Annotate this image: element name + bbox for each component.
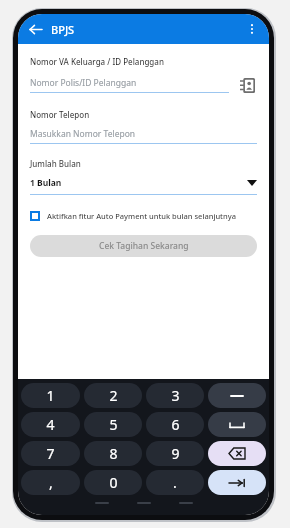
staticText: 4 xyxy=(46,415,55,434)
button[interactable]: Minus xyxy=(208,383,266,408)
staticText: 8 xyxy=(109,444,118,463)
button[interactable]: Cek Tagihan Sekarang xyxy=(30,235,257,257)
button[interactable]: 9 xyxy=(146,441,204,466)
button[interactable]: Back xyxy=(24,18,46,40)
button[interactable]: Masukkan Nomor Telepon xyxy=(30,128,257,144)
staticText: Nomor Polis/ID Pelanggan xyxy=(30,77,137,89)
staticText: Masukkan Nomor Telepon xyxy=(30,128,136,140)
button[interactable]: 6 xyxy=(146,412,204,437)
staticText: 5 xyxy=(109,415,118,434)
staticText: Nomor Telepon xyxy=(30,109,90,120)
staticText: Nomor VA Keluarga / ID Pelanggan xyxy=(30,56,164,67)
button[interactable]: 2 xyxy=(84,383,142,408)
button[interactable]: Next xyxy=(208,470,266,495)
button[interactable]: Pick contact xyxy=(237,75,257,95)
button[interactable]: Backspace xyxy=(208,441,266,466)
staticText: 1 xyxy=(46,386,55,405)
button[interactable]: Nomor Polis/ID Pelanggan xyxy=(30,77,229,93)
button[interactable]: Aktifkan fitur Auto Payment untuk bulan … xyxy=(30,211,257,221)
button[interactable]: , xyxy=(21,470,80,495)
button[interactable]: 0 xyxy=(84,470,142,495)
staticText: . xyxy=(173,473,177,492)
button[interactable]: . xyxy=(146,470,204,495)
button[interactable]: More options xyxy=(241,18,263,40)
staticText: Jumlah Bulan xyxy=(30,158,81,169)
button[interactable]: 1 Bulan xyxy=(30,177,257,195)
staticText: 1 Bulan xyxy=(30,177,247,189)
staticText: 9 xyxy=(171,444,180,463)
staticText: , xyxy=(49,473,53,492)
button[interactable]: 3 xyxy=(146,383,204,408)
button[interactable]: 7 xyxy=(21,441,80,466)
button[interactable]: 5 xyxy=(84,412,142,437)
staticText: 7 xyxy=(46,444,55,463)
staticText: 2 xyxy=(109,386,118,405)
staticText: BPJS xyxy=(51,22,75,37)
staticText: Cek Tagihan Sekarang xyxy=(99,240,189,252)
staticText: 3 xyxy=(171,386,180,405)
button[interactable]: 1 xyxy=(21,383,80,408)
staticText: 0 xyxy=(109,473,118,492)
button[interactable]: 8 xyxy=(84,441,142,466)
staticText: Aktifkan fitur Auto Payment untuk bulan … xyxy=(47,211,236,221)
staticText: 6 xyxy=(171,415,180,434)
button[interactable]: 4 xyxy=(21,412,80,437)
button[interactable]: Space xyxy=(208,412,266,437)
